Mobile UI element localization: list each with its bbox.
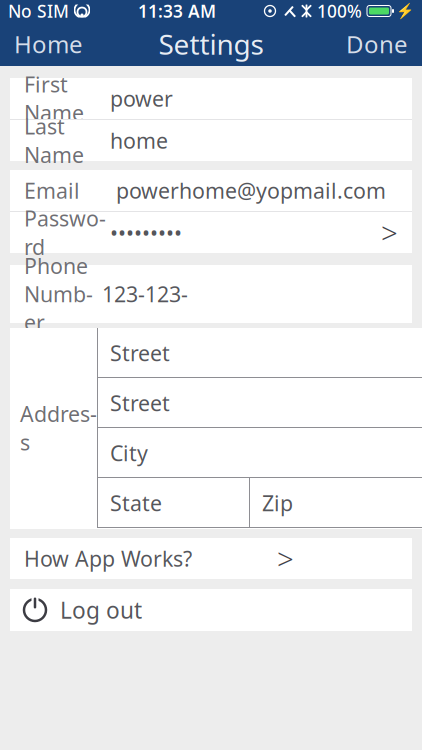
staticText: How App Works? <box>24 544 192 573</box>
button[interactable]: Done <box>332 22 422 66</box>
staticText: State <box>110 489 162 517</box>
staticText: Email <box>24 176 80 205</box>
button[interactable]: Home <box>0 22 97 66</box>
staticText: Done <box>346 28 408 60</box>
button[interactable]: Street <box>97 328 422 378</box>
button[interactable]: City <box>97 428 422 478</box>
staticText: City <box>110 439 148 467</box>
staticText: Log out <box>60 595 142 625</box>
staticText: Street <box>110 339 170 367</box>
staticText: powerhome@yopmail.com <box>116 176 386 205</box>
staticText: > <box>277 539 294 578</box>
staticText: Password <box>24 204 106 261</box>
button[interactable]: Zip <box>249 478 422 528</box>
staticText: ••••••••• <box>110 218 182 247</box>
staticText: > <box>381 213 398 252</box>
button[interactable]: Street <box>97 378 422 428</box>
staticText: Last Name <box>24 112 84 169</box>
button[interactable]: Password <box>10 212 412 253</box>
staticText: Zip <box>262 489 293 517</box>
staticText: 100% <box>317 0 362 22</box>
staticText: home <box>110 126 168 155</box>
staticText: power <box>110 84 173 113</box>
button[interactable]: Last Name <box>10 120 412 161</box>
button[interactable]: First Name <box>10 78 412 119</box>
staticText: Address <box>20 400 97 456</box>
staticText: 11:33 AM <box>138 0 216 22</box>
button[interactable]: Email <box>10 170 412 211</box>
staticText: Street <box>110 389 170 417</box>
staticText: ⚡ <box>396 3 414 19</box>
staticText: 123-123- <box>102 280 188 308</box>
button[interactable]: How App Works? <box>10 538 412 579</box>
button[interactable]: State <box>97 478 249 528</box>
staticText: Phone Number <box>24 251 93 336</box>
staticText: First Name <box>24 70 84 127</box>
button[interactable]: Log out <box>10 589 412 631</box>
staticText: Settings <box>158 25 263 63</box>
staticText: No SIM <box>8 0 69 22</box>
staticText: Home <box>14 28 83 60</box>
